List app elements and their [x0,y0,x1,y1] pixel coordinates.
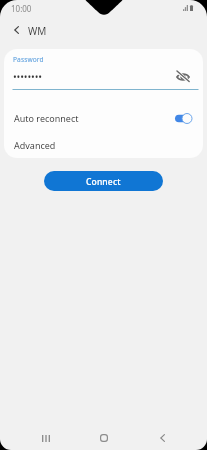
button[interactable]: Navigate up [5,19,27,41]
staticText: 10:00 [11,3,32,14]
staticText: Advanced [14,139,56,151]
staticText: Connect [86,176,121,188]
staticText: Password [13,55,44,64]
staticText: WM [28,24,47,38]
button[interactable]: Connect [44,171,163,191]
button[interactable]: Advanced [4,131,203,158]
staticText: Auto reconnect [14,112,79,124]
button[interactable]: Back [152,428,172,448]
button[interactable]: Home [94,428,114,448]
button[interactable]: Show password [170,68,195,84]
staticText: •••••••• [13,70,42,84]
button[interactable]: Recent apps [36,428,56,448]
button[interactable]: Auto reconnect [4,104,203,132]
